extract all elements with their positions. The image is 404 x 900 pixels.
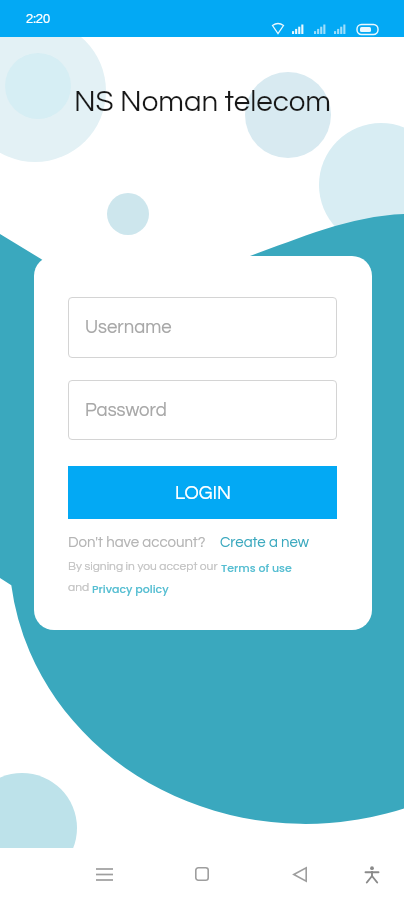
staticText: NS Noman telecom [74,87,331,117]
button[interactable]: Password [68,380,337,440]
staticText: Username [85,318,172,337]
button[interactable]: Terms of use [221,560,292,575]
staticText: Don't have account? [68,535,206,550]
staticText: Privacy policy [92,581,169,596]
staticText: 2:20 [26,12,51,25]
button[interactable]: Back [280,854,320,894]
button[interactable]: Create a new [220,535,310,550]
button[interactable]: LOGIN [68,466,337,519]
button[interactable]: Username [68,297,337,358]
staticText: Terms of use [221,560,292,575]
button[interactable]: Accessibility [352,854,392,894]
button[interactable]: Recent apps [84,854,124,894]
button[interactable]: Privacy policy [92,581,169,596]
staticText: By signing in you accept our [68,560,221,572]
staticText: Password [85,401,167,420]
staticText: and [68,581,92,593]
button[interactable]: Home [182,854,222,894]
staticText: LOGIN [175,483,231,503]
staticText: Create a new [220,535,310,550]
